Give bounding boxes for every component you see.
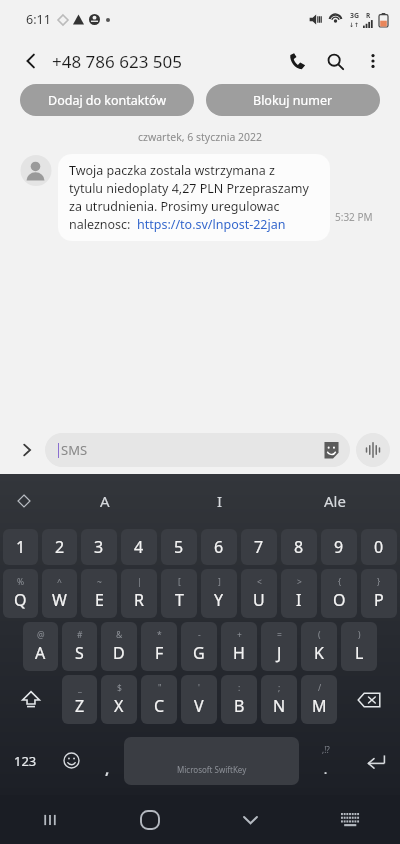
button[interactable]: Enter — [352, 726, 400, 795]
staticText: C — [154, 695, 165, 717]
button[interactable]: } — [361, 569, 397, 618]
button[interactable]: + — [221, 622, 257, 671]
staticText: 6 — [214, 536, 224, 558]
button[interactable]: Shift — [1, 673, 60, 726]
button[interactable]: 3 — [81, 529, 117, 565]
button[interactable]: _ — [62, 675, 97, 724]
button[interactable]: Dodaj do kontaktów — [20, 84, 194, 116]
button[interactable]: Voice input — [356, 433, 390, 467]
button[interactable]: # — [62, 622, 97, 671]
staticText: Ale — [324, 491, 346, 511]
staticText: 5 — [174, 536, 184, 558]
button[interactable]: ,!? — [300, 726, 352, 795]
staticText: tytulu niedoplaty 4,27 PLN Przepraszamy — [69, 180, 309, 197]
button[interactable]: SMS — [45, 433, 350, 467]
button[interactable]: " — [141, 675, 177, 724]
staticText: + — [237, 629, 242, 641]
staticText: +48 786 623 505 — [52, 50, 182, 73]
staticText: % — [17, 576, 25, 588]
staticText: | — [137, 576, 142, 588]
staticText: H — [233, 642, 245, 664]
staticText: R — [134, 589, 144, 611]
staticText: N — [273, 695, 286, 717]
button[interactable]: , — [92, 726, 123, 795]
button[interactable]: Recents — [0, 795, 100, 844]
button[interactable]: 1 — [3, 529, 38, 565]
staticText: ,!? — [322, 744, 330, 755]
button[interactable]: 8 — [281, 529, 317, 565]
button[interactable]: 4 — [121, 529, 157, 565]
staticText: ] — [218, 576, 221, 588]
button[interactable]: Expand — [13, 436, 41, 464]
button[interactable]: Ale — [277, 474, 392, 527]
button[interactable]: Back — [14, 44, 48, 78]
staticText: 6:11 — [26, 11, 51, 28]
button[interactable]: Hide keyboard — [200, 795, 300, 844]
button[interactable]: 2 — [42, 529, 77, 565]
button[interactable]: / — [301, 675, 337, 724]
button[interactable]: ' — [181, 675, 217, 724]
staticText: [ — [178, 576, 181, 588]
staticText: P — [374, 589, 384, 611]
button[interactable]: Call — [278, 42, 316, 80]
staticText: 3G — [350, 11, 360, 21]
button[interactable]: | — [121, 569, 157, 618]
button[interactable]: - — [181, 622, 217, 671]
staticText: * — [157, 629, 162, 641]
staticText: I — [217, 491, 223, 511]
staticText: ) — [358, 629, 361, 641]
staticText: W — [52, 589, 67, 611]
button[interactable]: ~ — [81, 569, 117, 618]
button[interactable]: Search — [316, 42, 354, 80]
button[interactable]: % — [3, 569, 38, 618]
button[interactable]: 7 — [241, 529, 277, 565]
staticText: } — [377, 576, 381, 588]
button[interactable]: 5 — [161, 529, 197, 565]
button[interactable]: 0 — [361, 529, 397, 565]
button[interactable]: More options — [354, 42, 392, 80]
button[interactable]: ; — [261, 675, 297, 724]
staticText: = — [277, 629, 282, 641]
button[interactable]: { — [321, 569, 357, 618]
staticText: T — [175, 589, 184, 611]
button[interactable]: ^ — [42, 569, 77, 618]
button[interactable]: & — [101, 622, 137, 671]
button[interactable]: Home — [100, 795, 200, 844]
button[interactable]: ( — [301, 622, 337, 671]
button[interactable]: Blokuj numer — [206, 84, 380, 116]
staticText: Q — [14, 589, 27, 611]
staticText: , — [105, 758, 110, 778]
button[interactable]: < — [241, 569, 277, 618]
staticText: < — [257, 576, 262, 588]
staticText: B — [234, 695, 245, 717]
button[interactable]: * — [141, 622, 177, 671]
button[interactable]: Backspace — [339, 673, 399, 726]
button[interactable]: 9 — [321, 529, 357, 565]
button[interactable]: Switch keyboard — [300, 795, 400, 844]
button[interactable]: $ — [101, 675, 137, 724]
staticText: Blokuj numer — [253, 92, 333, 109]
button[interactable]: A — [48, 474, 162, 527]
button[interactable]: Twoja paczka zostala wstrzymana z — [58, 154, 330, 241]
staticText: 3 — [94, 536, 104, 558]
button[interactable]: = — [261, 622, 297, 671]
button[interactable]: [ — [161, 569, 197, 618]
button[interactable]: I — [162, 474, 277, 527]
button[interactable]: @ — [23, 622, 58, 671]
staticText: za utrudnienia. Prosimy uregulowac — [69, 198, 280, 215]
staticText: G — [193, 642, 205, 664]
button[interactable]: > — [281, 569, 317, 618]
button[interactable]: Emoji — [50, 726, 92, 795]
staticText: O — [333, 589, 346, 611]
button[interactable]: Stickers — [320, 439, 342, 461]
button[interactable]: ] — [201, 569, 237, 618]
staticText: & — [116, 629, 123, 641]
button[interactable]: Microsoft SwiftKey — [124, 737, 299, 785]
button[interactable]: : — [221, 675, 257, 724]
button[interactable]: 123 — [0, 726, 50, 795]
button[interactable]: 6 — [201, 529, 237, 565]
button[interactable]: ) — [341, 622, 377, 671]
staticText: K — [314, 642, 324, 664]
button[interactable]: Expand toolbar — [0, 474, 48, 527]
staticText: # — [77, 629, 83, 641]
